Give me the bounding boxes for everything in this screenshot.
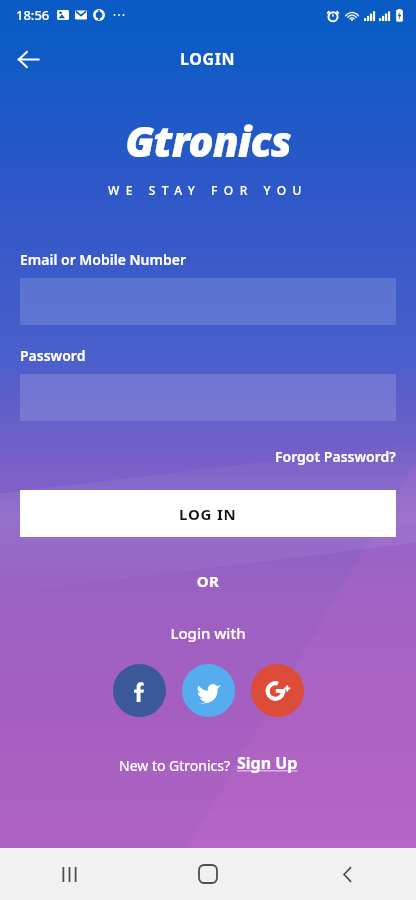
staticText: Email or Mobile Number bbox=[20, 250, 187, 269]
button[interactable] bbox=[20, 374, 396, 421]
staticText: Password bbox=[20, 346, 86, 365]
staticText: Gtronics bbox=[125, 112, 291, 162]
staticText: WE STAY FOR YOU bbox=[108, 182, 308, 198]
staticText: OR bbox=[20, 571, 396, 591]
staticText: New to Gtronics? bbox=[119, 756, 231, 775]
staticText: LOGIN bbox=[180, 48, 236, 70]
button[interactable]: Sign in with Google Plus bbox=[251, 664, 304, 717]
staticText: 18:56 bbox=[16, 6, 50, 24]
button[interactable]: LOG IN bbox=[20, 490, 396, 537]
button[interactable]: Home bbox=[182, 848, 234, 900]
staticText: LOG IN bbox=[179, 504, 237, 524]
staticText: Login with bbox=[20, 623, 396, 643]
button[interactable]: Recent apps bbox=[43, 848, 95, 900]
button[interactable]: Back bbox=[321, 848, 373, 900]
button[interactable]: Sign in with Twitter bbox=[182, 664, 235, 717]
button[interactable]: Back bbox=[8, 39, 48, 79]
button[interactable]: Forgot Password? bbox=[275, 445, 396, 468]
button[interactable]: Sign Up bbox=[237, 753, 298, 775]
button[interactable]: Sign in with Facebook bbox=[113, 664, 166, 717]
